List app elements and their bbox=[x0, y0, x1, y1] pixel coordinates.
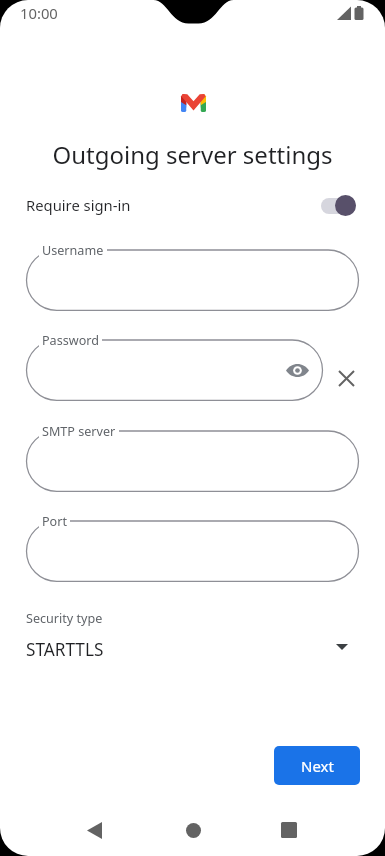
button[interactable]: Home bbox=[177, 814, 209, 846]
button[interactable]: Show password bbox=[282, 355, 312, 385]
button[interactable]: Open security type menu bbox=[326, 632, 358, 662]
button[interactable]: Clear password bbox=[331, 363, 362, 394]
button[interactable]: Back bbox=[78, 814, 110, 846]
button[interactable] bbox=[321, 195, 356, 216]
button[interactable] bbox=[26, 330, 323, 400]
button[interactable]: Next bbox=[274, 746, 360, 785]
staticText: Port bbox=[42, 513, 67, 530]
button[interactable]: Require sign-in bbox=[0, 188, 385, 222]
staticText: Security type bbox=[26, 610, 103, 627]
button[interactable] bbox=[26, 240, 359, 310]
staticText: Next bbox=[301, 756, 334, 776]
button[interactable] bbox=[26, 511, 359, 581]
staticText: Password bbox=[42, 332, 99, 349]
staticText: STARTTLS bbox=[26, 638, 104, 661]
button[interactable] bbox=[26, 421, 359, 491]
staticText: 10:00 bbox=[20, 3, 58, 23]
staticText: Require sign-in bbox=[26, 195, 131, 215]
button[interactable]: Recent apps bbox=[273, 814, 305, 846]
staticText: SMTP server bbox=[42, 423, 116, 440]
staticText: Username bbox=[42, 242, 104, 259]
button[interactable]: Security type bbox=[0, 602, 385, 664]
staticText: Outgoing server settings bbox=[0, 138, 385, 171]
